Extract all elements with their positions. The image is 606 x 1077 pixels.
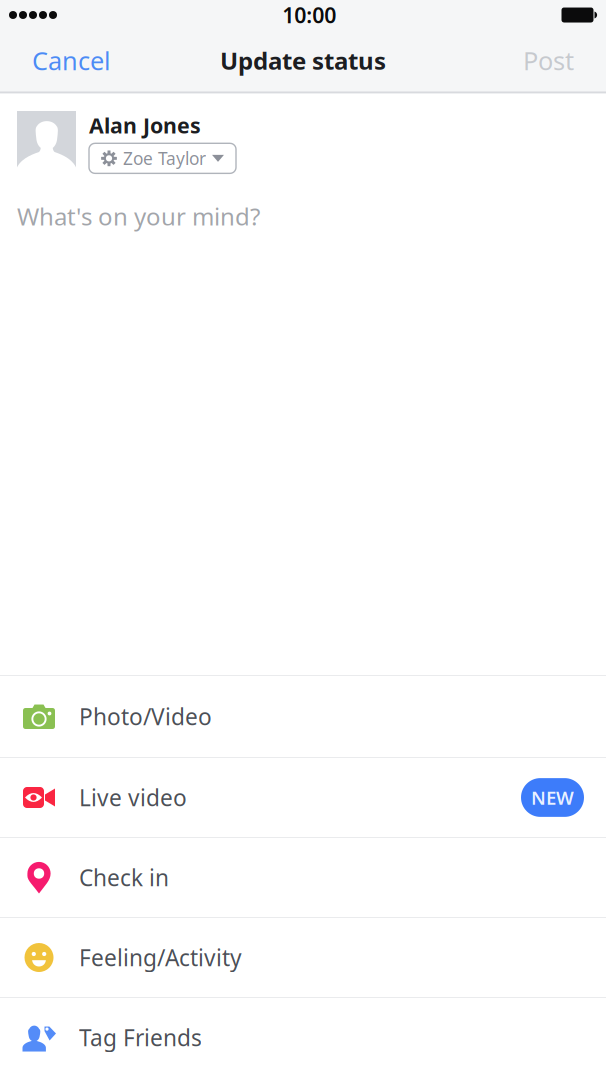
button[interactable]: Check in [0, 838, 606, 917]
button[interactable]: Photo/Video [0, 676, 606, 757]
staticText: 10:00 [282, 1, 336, 29]
button[interactable]: Tag Friends [0, 998, 606, 1077]
staticText: Tag Friends [79, 1022, 202, 1052]
staticText: Update status [220, 45, 386, 76]
button[interactable]: Live video [0, 758, 606, 837]
button[interactable]: What's on your mind? [0, 173, 606, 244]
staticText: Photo/Video [79, 701, 212, 731]
button[interactable]: Feeling/Activity [0, 918, 606, 997]
button[interactable]: Cancel [16, 32, 127, 89]
staticText: Post [523, 44, 574, 77]
button[interactable]: Post [507, 32, 590, 89]
staticText: Cancel [32, 44, 111, 77]
staticText: Feeling/Activity [79, 942, 242, 972]
staticText: Zoe Taylor [123, 147, 206, 170]
button[interactable]: Profile picture [17, 111, 76, 170]
button[interactable]: Zoe Taylor [89, 143, 236, 173]
staticText: Alan Jones [89, 111, 201, 139]
staticText: Check in [79, 862, 169, 892]
staticText: What's on your mind? [17, 200, 260, 232]
staticText: NEW [531, 785, 574, 810]
staticText: Live video [79, 782, 187, 812]
